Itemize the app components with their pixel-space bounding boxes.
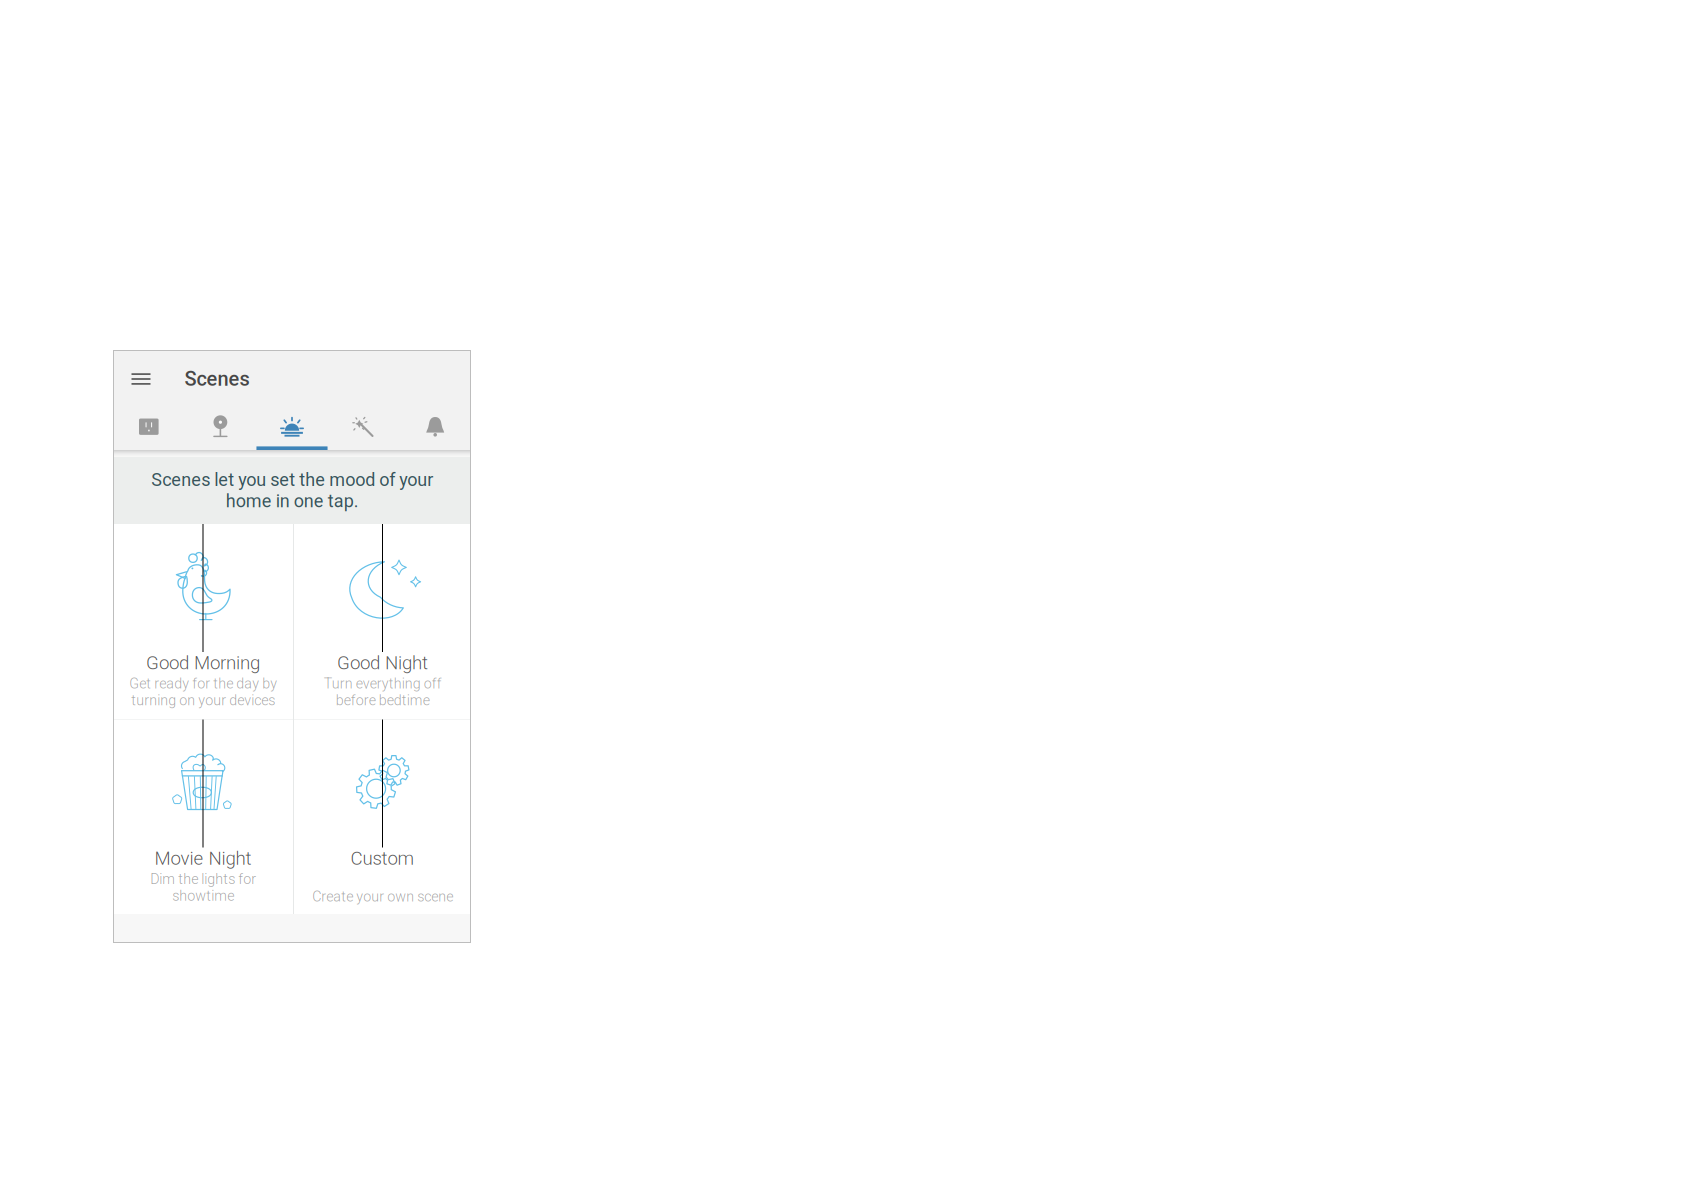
- button[interactable]: Movie Night: [113, 719, 293, 914]
- button[interactable]: Automations: [328, 407, 399, 450]
- staticText: Create your own scene: [312, 888, 453, 905]
- staticText: Good Night: [337, 652, 428, 674]
- staticText: Turn everything off before bedtime: [323, 675, 441, 709]
- staticText: Movie Night: [154, 847, 251, 869]
- staticText: Dim the lights for showtime: [150, 871, 256, 904]
- staticText: Get ready for the day by turning on your…: [129, 675, 277, 709]
- button[interactable]: Sensors: [185, 407, 256, 450]
- staticText: Scenes let you set the mood of your home…: [151, 469, 433, 512]
- button[interactable]: Good Night: [294, 524, 471, 719]
- staticText: Good Morning: [146, 652, 260, 674]
- button[interactable]: Outlets: [113, 407, 185, 450]
- button[interactable]: Scenes: [256, 407, 328, 450]
- button[interactable]: Menu: [122, 351, 159, 407]
- staticText: Custom: [350, 847, 414, 869]
- staticText: Scenes: [184, 367, 249, 391]
- button[interactable]: Alerts: [399, 407, 471, 450]
- button[interactable]: Good Morning: [113, 524, 293, 719]
- button[interactable]: Custom: [294, 719, 471, 914]
